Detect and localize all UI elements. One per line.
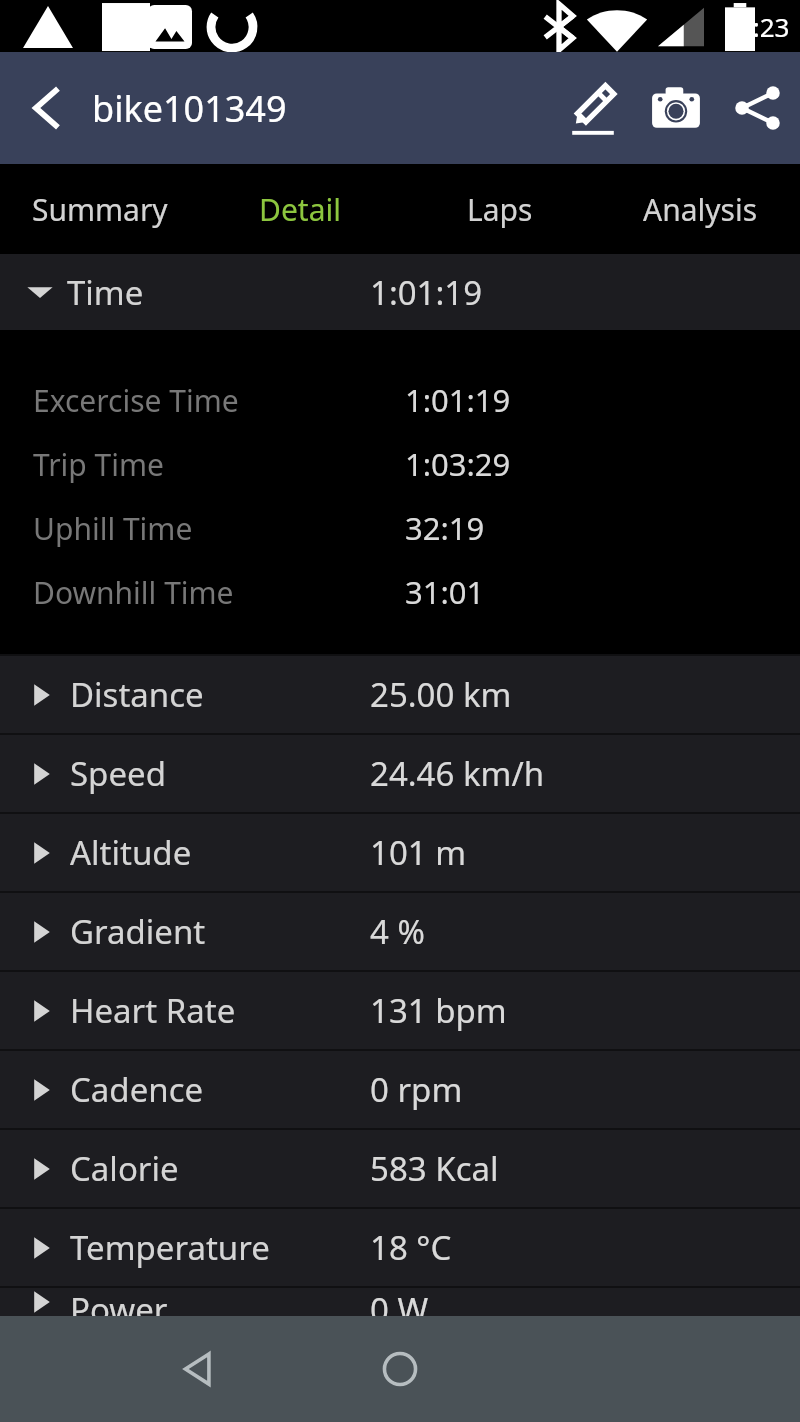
- button[interactable]: Summary: [0, 164, 200, 254]
- staticText: Time: [67, 270, 144, 315]
- button[interactable]: Back: [0, 52, 92, 164]
- staticText: Calorie: [70, 1146, 179, 1191]
- staticText: Trip Time: [33, 444, 164, 485]
- staticText: 25.00 km: [370, 672, 512, 717]
- button[interactable]: Downhill Time: [0, 560, 800, 624]
- button[interactable]: Laps: [400, 164, 600, 254]
- staticText: Analysis: [643, 189, 758, 230]
- button[interactable]: Altitude: [0, 813, 800, 892]
- button[interactable]: Uphill Time: [0, 496, 800, 560]
- button[interactable]: Temperature: [0, 1208, 800, 1287]
- staticText: Downhill Time: [33, 572, 234, 613]
- staticText: 31:01: [405, 571, 485, 613]
- staticText: Gradient: [70, 909, 206, 954]
- staticText: Excercise Time: [33, 380, 239, 421]
- staticText: bike101349: [92, 84, 550, 133]
- staticText: 0 rpm: [370, 1067, 463, 1112]
- button[interactable]: Time: [0, 254, 800, 330]
- button[interactable]: Back: [150, 1321, 246, 1417]
- button[interactable]: Share: [716, 52, 800, 164]
- button[interactable]: Heart Rate: [0, 971, 800, 1050]
- staticText: 1:01:19: [370, 270, 483, 315]
- staticText: Heart Rate: [70, 988, 236, 1033]
- staticText: 131 bpm: [370, 988, 507, 1033]
- button[interactable]: Trip Time: [0, 432, 800, 496]
- staticText: Altitude: [70, 830, 192, 875]
- button[interactable]: Speed: [0, 734, 800, 813]
- staticText: Summary: [32, 189, 168, 230]
- staticText: 101 m: [370, 830, 467, 875]
- button[interactable]: Power: [0, 1287, 800, 1316]
- staticText: Cadence: [70, 1067, 204, 1112]
- button[interactable]: Detail: [200, 164, 400, 254]
- staticText: Laps: [467, 189, 533, 230]
- staticText: 32:19: [405, 507, 485, 549]
- staticText: Temperature: [70, 1225, 270, 1270]
- button[interactable]: Home: [352, 1321, 448, 1417]
- staticText: 18 °C: [370, 1225, 452, 1270]
- staticText: Power: [70, 1287, 168, 1316]
- staticText: 0 W: [370, 1287, 429, 1316]
- staticText: Speed: [70, 751, 166, 796]
- staticText: Uphill Time: [33, 508, 193, 549]
- button[interactable]: Excercise Time: [0, 368, 800, 432]
- button[interactable]: Cadence: [0, 1050, 800, 1129]
- staticText: 1:01:19: [405, 379, 511, 421]
- staticText: 583 Kcal: [370, 1146, 499, 1191]
- staticText: 17:23: [723, 9, 790, 44]
- button[interactable]: Distance: [0, 655, 800, 734]
- button[interactable]: Analysis: [600, 164, 800, 254]
- button[interactable]: Camera: [636, 52, 716, 164]
- staticText: 1:03:29: [405, 443, 511, 485]
- staticText: 24.46 km/h: [370, 751, 545, 796]
- button[interactable]: Gradient: [0, 892, 800, 971]
- staticText: Distance: [70, 672, 204, 717]
- staticText: 4 %: [370, 909, 425, 954]
- button[interactable]: Calorie: [0, 1129, 800, 1208]
- button[interactable]: Edit: [550, 52, 636, 164]
- staticText: Detail: [259, 189, 341, 230]
